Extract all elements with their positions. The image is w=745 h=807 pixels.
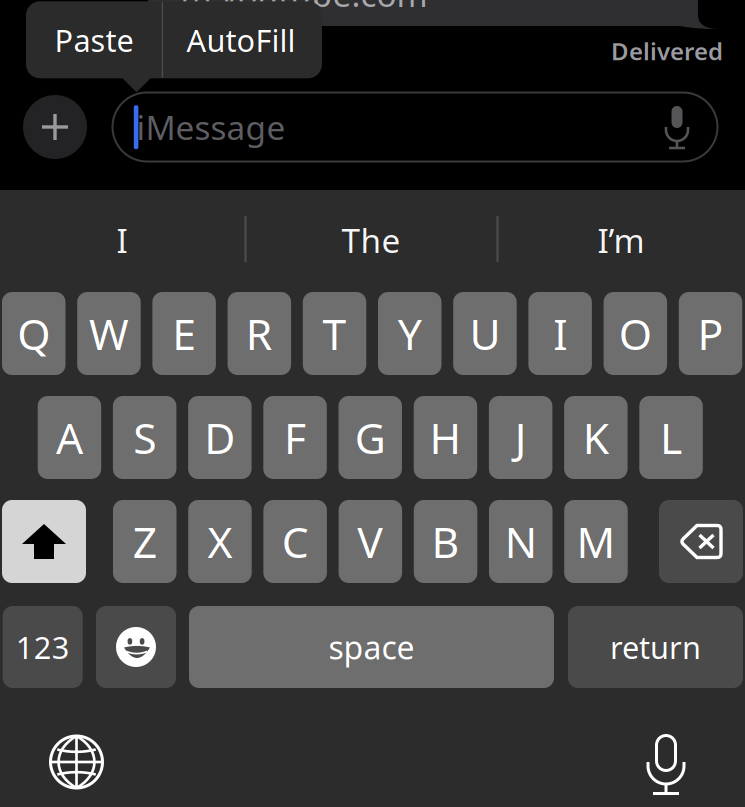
button[interactable]: AutoFill bbox=[162, 2, 319, 78]
staticText: X bbox=[207, 513, 232, 570]
staticText: return bbox=[610, 627, 701, 667]
button[interactable]: return bbox=[568, 606, 743, 688]
button[interactable]: T bbox=[303, 292, 366, 375]
staticText: I bbox=[553, 305, 567, 362]
button[interactable]: Delete bbox=[659, 500, 743, 583]
button[interactable]: M bbox=[564, 500, 628, 583]
button[interactable]: Q bbox=[2, 292, 65, 375]
staticText: U bbox=[469, 305, 500, 362]
staticText: Z bbox=[133, 513, 157, 570]
staticText: D bbox=[204, 409, 235, 466]
staticText: space bbox=[328, 626, 414, 668]
staticText: G bbox=[355, 409, 386, 466]
staticText: H bbox=[429, 409, 461, 466]
staticText: K bbox=[583, 409, 609, 466]
button[interactable]: Paste bbox=[26, 2, 161, 78]
button[interactable]: L bbox=[639, 396, 703, 479]
button[interactable]: R bbox=[228, 292, 291, 375]
staticText: S bbox=[133, 409, 156, 466]
staticText: B bbox=[432, 513, 460, 570]
staticText: O bbox=[619, 305, 652, 362]
button[interactable]: Shift bbox=[2, 500, 86, 583]
button[interactable]: Add attachment bbox=[23, 95, 87, 159]
button[interactable]: F bbox=[263, 396, 327, 479]
button[interactable]: S bbox=[113, 396, 176, 479]
staticText: P bbox=[698, 305, 724, 362]
button[interactable]: W bbox=[77, 292, 141, 375]
button[interactable]: 123 bbox=[3, 606, 83, 688]
button[interactable]: Emoji keyboard bbox=[96, 606, 176, 688]
button[interactable]: K bbox=[564, 396, 628, 479]
button[interactable]: Next keyboard bbox=[48, 734, 104, 790]
staticText: m.youtube.com bbox=[180, 0, 427, 16]
button[interactable]: N bbox=[489, 500, 552, 583]
staticText: L bbox=[660, 409, 682, 466]
staticText: V bbox=[357, 513, 383, 570]
staticText: F bbox=[284, 409, 306, 466]
button[interactable]: P bbox=[679, 292, 742, 375]
button[interactable]: G bbox=[338, 396, 402, 479]
button[interactable]: space bbox=[189, 606, 554, 688]
staticText: M bbox=[576, 513, 615, 570]
button[interactable]: D bbox=[188, 396, 252, 479]
staticText: C bbox=[282, 513, 309, 570]
staticText: A bbox=[56, 409, 83, 466]
staticText: I bbox=[116, 218, 127, 262]
button[interactable]: A bbox=[38, 396, 101, 479]
button[interactable]: Message field bbox=[112, 92, 717, 161]
button[interactable]: Dictation bbox=[644, 731, 688, 793]
button[interactable]: O bbox=[604, 292, 667, 375]
staticText: Y bbox=[398, 305, 422, 362]
staticText: Delivered bbox=[611, 35, 723, 67]
button[interactable]: X bbox=[188, 500, 252, 583]
staticText: AutoFill bbox=[186, 20, 295, 60]
staticText: Q bbox=[17, 305, 50, 362]
button[interactable]: E bbox=[152, 292, 216, 375]
staticText: Paste bbox=[54, 20, 133, 60]
button[interactable]: Z bbox=[113, 500, 176, 583]
button[interactable]: Y bbox=[378, 292, 441, 375]
button[interactable]: U bbox=[453, 292, 517, 375]
staticText: T bbox=[323, 305, 347, 362]
button[interactable]: J bbox=[489, 396, 552, 479]
staticText: The bbox=[341, 218, 400, 262]
button[interactable]: Audio message bbox=[662, 105, 692, 147]
staticText: J bbox=[515, 409, 527, 466]
button[interactable]: V bbox=[339, 500, 402, 583]
staticText: N bbox=[505, 513, 537, 570]
button[interactable]: H bbox=[414, 396, 477, 479]
staticText: R bbox=[246, 305, 273, 362]
staticText: E bbox=[172, 305, 196, 362]
button[interactable]: I bbox=[528, 292, 592, 375]
staticText: I’m bbox=[597, 218, 644, 262]
button[interactable]: C bbox=[263, 500, 327, 583]
button[interactable]: B bbox=[414, 500, 477, 583]
staticText: iMessage bbox=[136, 105, 285, 149]
staticText: W bbox=[89, 305, 129, 362]
staticText: 123 bbox=[16, 627, 70, 667]
